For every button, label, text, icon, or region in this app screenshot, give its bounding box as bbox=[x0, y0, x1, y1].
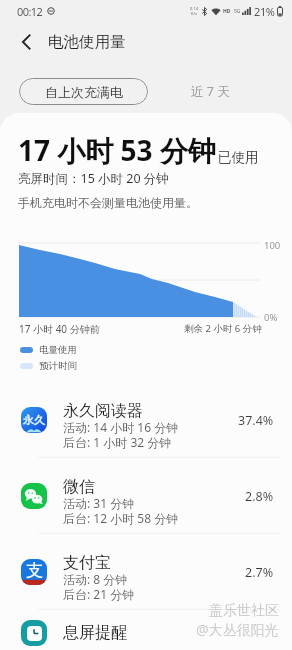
staticText: 亮屏时间：15 小时 20 分钟 bbox=[18, 170, 169, 187]
button[interactable]: 自上次充满电 bbox=[19, 78, 148, 105]
staticText: 活动: 31 分钟 bbox=[63, 495, 135, 511]
staticText: 17 小时 53 分钟 bbox=[18, 131, 216, 169]
staticText: 手机充电时不会测量电池使用量。 bbox=[18, 195, 198, 210]
button[interactable]: 息屏提醒 bbox=[0, 610, 292, 650]
staticText: 电池使用量 bbox=[48, 32, 126, 52]
staticText: 100 bbox=[264, 239, 281, 252]
staticText: 37.4% bbox=[238, 412, 274, 429]
staticText: 已使用 bbox=[218, 149, 259, 166]
staticText: 0% bbox=[264, 311, 278, 324]
button[interactable]: 近 7 天 bbox=[148, 78, 250, 105]
staticText: 21% bbox=[254, 4, 275, 19]
staticText: 电量使用 bbox=[39, 344, 77, 356]
staticText: @大丛很阳光 bbox=[196, 620, 279, 639]
staticText: 0.14 bbox=[190, 6, 198, 11]
staticText: 活动: 14 小时 16 分钟 bbox=[63, 419, 179, 435]
button[interactable]: 支 bbox=[0, 534, 292, 610]
staticText: 2.8% bbox=[245, 488, 274, 505]
staticText: K/s bbox=[191, 11, 197, 16]
staticText: 自上次充满电 bbox=[45, 84, 123, 100]
button[interactable]: 微信 bbox=[0, 458, 292, 534]
staticText: 17 小时 40 分钟前 bbox=[19, 322, 100, 336]
staticText: 剩余 2 小时 6 分钟 bbox=[184, 322, 262, 335]
staticText: 后台: 1 小时 32 分钟 bbox=[63, 434, 172, 450]
staticText: 后台: 21 分钟 bbox=[63, 586, 135, 602]
button[interactable]: 永久 bbox=[0, 382, 292, 458]
staticText: 支 bbox=[26, 560, 43, 581]
staticText: 微信 bbox=[63, 477, 95, 497]
staticText: 5G bbox=[234, 8, 241, 15]
staticText: 息屏提醒 bbox=[63, 623, 127, 643]
staticText: 盖乐世社区 bbox=[209, 602, 279, 620]
staticText: HD bbox=[223, 8, 231, 15]
staticText: 00:12 bbox=[17, 4, 43, 19]
staticText: 后台: 12 小时 58 分钟 bbox=[63, 510, 179, 526]
staticText: 永久 bbox=[23, 413, 45, 427]
staticText: 支付宝 bbox=[63, 553, 111, 573]
button[interactable]: Back bbox=[13, 29, 39, 55]
staticText: 近 7 天 bbox=[191, 83, 230, 100]
staticText: 永久阅读器 bbox=[63, 401, 143, 421]
staticText: 2.7% bbox=[245, 564, 274, 581]
staticText: 活动: 8 分钟 bbox=[63, 571, 128, 587]
staticText: 预计时间 bbox=[39, 360, 77, 372]
